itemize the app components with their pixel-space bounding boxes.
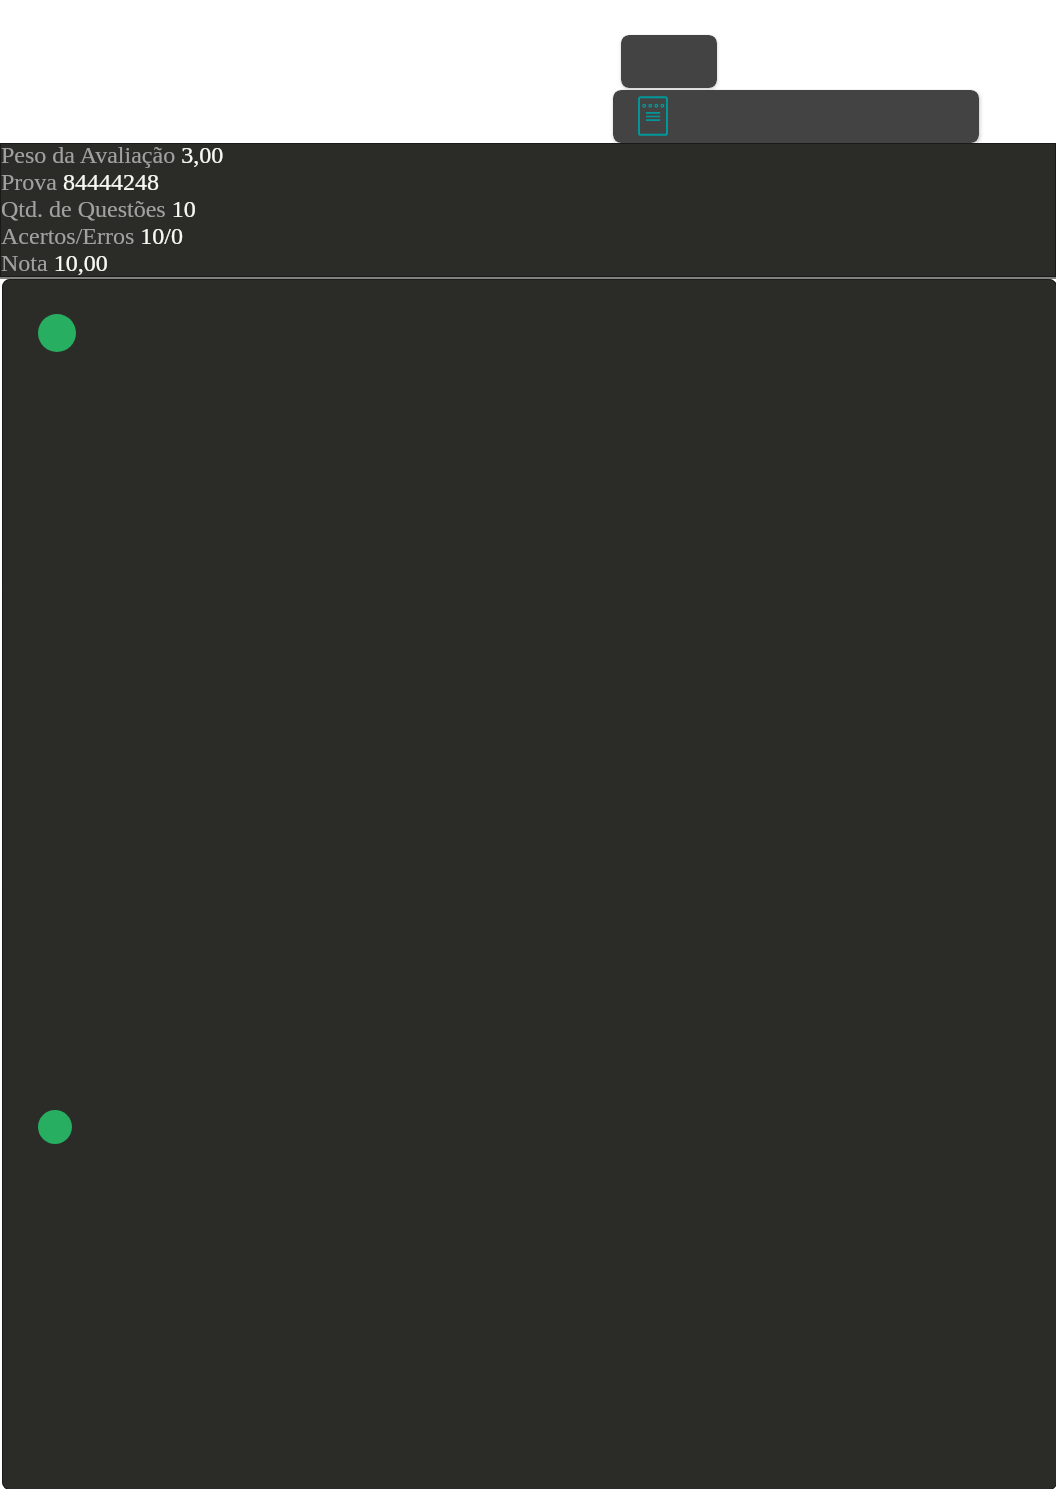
staticText: Prova 84444248 <box>1 169 159 196</box>
button[interactable]: Questão correta <box>38 314 76 352</box>
staticText: Peso da Avaliação 3,00 <box>1 142 224 169</box>
button[interactable]: Prova <box>613 90 979 143</box>
staticText: Nota 10,00 <box>1 250 108 276</box>
button[interactable]: Voltar <box>621 35 717 88</box>
staticText: Qtd. de Questões 10 <box>1 196 196 223</box>
button[interactable]: Questão correta <box>38 1110 72 1144</box>
staticText: Acertos/Erros 10/0 <box>1 223 183 250</box>
button[interactable]: Prova <box>635 93 671 139</box>
